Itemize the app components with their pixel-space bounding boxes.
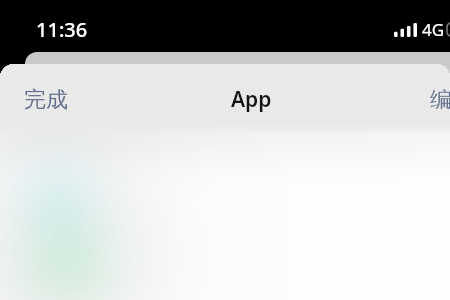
staticText: 11:36 [36, 16, 88, 43]
staticText: 4G [422, 18, 445, 41]
other: Battery level [447, 23, 450, 36]
staticText: App [231, 85, 272, 114]
button[interactable]: 完成 [16, 81, 76, 119]
button[interactable]: 编辑 [422, 81, 450, 119]
other: Cellular signal strength [394, 23, 417, 37]
staticText: 完成 [24, 86, 68, 114]
staticText: 编辑 [430, 86, 450, 114]
